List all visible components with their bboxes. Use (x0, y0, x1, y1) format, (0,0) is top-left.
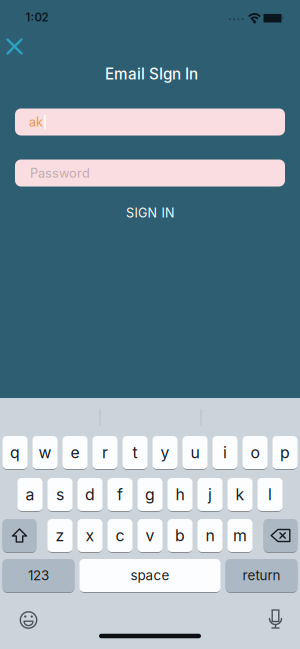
button[interactable]: b (167, 519, 193, 552)
staticText: e (70, 443, 79, 462)
staticText: p (280, 443, 290, 462)
button[interactable]: Shift (2, 519, 37, 552)
button[interactable]: w (32, 436, 58, 469)
button[interactable]: Password (15, 159, 285, 186)
button[interactable]: c (107, 519, 133, 552)
button[interactable]: j (197, 478, 223, 511)
staticText: l (268, 485, 272, 504)
staticText: Password (30, 165, 90, 181)
staticText: g (145, 485, 155, 504)
button[interactable]: Email (15, 108, 285, 135)
button[interactable]: SIGN IN (100, 200, 200, 226)
button[interactable]: n (197, 519, 223, 552)
staticText: 123 (28, 567, 49, 584)
button[interactable]: h (167, 478, 193, 511)
staticText: return (242, 567, 280, 584)
button[interactable]: Emoji (14, 606, 42, 634)
button[interactable]: e (62, 436, 88, 469)
button[interactable]: o (242, 436, 268, 469)
button[interactable]: t (122, 436, 148, 469)
button[interactable]: x (77, 519, 103, 552)
staticText: v (145, 526, 154, 545)
staticText: y (160, 443, 169, 462)
staticText: d (85, 485, 95, 504)
button[interactable]: i (212, 436, 238, 469)
button[interactable]: r (92, 436, 118, 469)
staticText: q (10, 443, 20, 462)
staticText: k (235, 485, 244, 504)
staticText: t (132, 443, 137, 462)
button[interactable]: s (47, 478, 73, 511)
staticText: SIGN IN (126, 205, 174, 221)
button[interactable]: z (47, 519, 73, 552)
staticText: h (175, 485, 184, 504)
button[interactable]: 123 (2, 559, 75, 592)
button[interactable]: q (2, 436, 28, 469)
staticText: ak (29, 114, 43, 129)
button[interactable]: Dictate (261, 606, 289, 634)
staticText: space (130, 567, 169, 584)
staticText: b (175, 526, 185, 545)
staticText: r (102, 443, 108, 462)
staticText: m (233, 526, 247, 545)
staticText: z (55, 526, 64, 545)
button[interactable]: g (137, 478, 163, 511)
button[interactable]: u (182, 436, 208, 469)
staticText: w (38, 443, 51, 462)
button[interactable]: l (257, 478, 283, 511)
button[interactable]: space (79, 559, 221, 592)
staticText: u (190, 443, 199, 462)
button[interactable]: return (225, 559, 298, 592)
staticText: s (56, 485, 64, 504)
staticText: o (250, 443, 259, 462)
button[interactable]: Delete (263, 519, 298, 552)
button[interactable]: Close (0, 32, 28, 60)
staticText: a (25, 485, 34, 504)
staticText: j (208, 485, 212, 504)
button[interactable]: k (227, 478, 253, 511)
staticText: x (85, 526, 94, 545)
button[interactable]: a (17, 478, 43, 511)
staticText: 1:02 (25, 11, 48, 24)
button[interactable]: f (107, 478, 133, 511)
button[interactable]: m (227, 519, 253, 552)
button[interactable]: d (77, 478, 103, 511)
button[interactable]: v (137, 519, 163, 552)
staticText: c (115, 526, 124, 545)
staticText: n (205, 526, 214, 545)
staticText: i (223, 443, 227, 462)
staticText: f (117, 485, 123, 504)
button[interactable]: y (152, 436, 178, 469)
staticText: Email SIgn In (105, 65, 198, 83)
button[interactable]: p (272, 436, 298, 469)
